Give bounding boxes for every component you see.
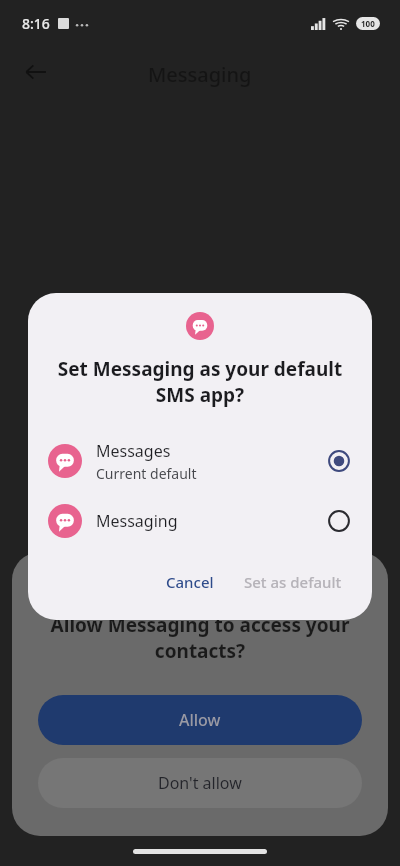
staticText: 100 [361, 18, 375, 29]
button[interactable]: Cancel [154, 564, 226, 600]
staticText: Don't allow [158, 772, 242, 794]
staticText: Allow [179, 709, 221, 731]
staticText: Messaging [148, 61, 252, 88]
staticText: 8:16 [22, 14, 50, 33]
button[interactable]: Don't allow [38, 758, 362, 808]
button[interactable]: Allow [38, 695, 362, 745]
staticText: Messaging [96, 510, 178, 532]
staticText: Allow Messaging to access your contacts? [38, 612, 362, 663]
staticText: Set as default [244, 572, 342, 592]
button[interactable]: Messages [28, 430, 372, 492]
staticText: Cancel [166, 572, 214, 592]
button[interactable]: Set as default [232, 564, 354, 600]
staticText: Messages [96, 440, 171, 462]
staticText: Set Messaging as your default SMS app? [54, 356, 346, 408]
button[interactable]: Messaging [28, 492, 372, 550]
staticText: Current default [96, 464, 197, 483]
